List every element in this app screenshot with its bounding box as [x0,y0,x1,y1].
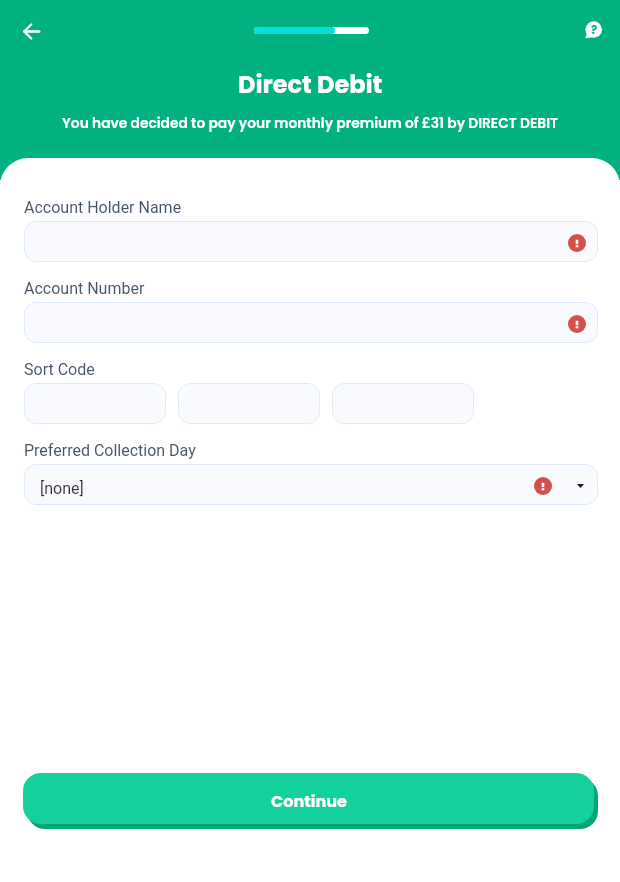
button[interactable] [178,383,320,424]
staticText: ? [591,22,598,38]
staticText: Account Holder Name [24,198,182,217]
button[interactable]: Help [578,15,608,45]
staticText: Account Number [24,279,145,298]
staticText: Sort Code [24,360,95,379]
staticText: Preferred Collection Day [24,441,196,460]
button[interactable] [24,383,166,424]
button[interactable] [332,383,474,424]
staticText: Direct Debit [238,68,383,102]
button[interactable]: Progress [254,27,369,34]
button[interactable]: Back [13,13,49,49]
button[interactable] [24,221,598,262]
staticText: You have decided to pay your monthly pre… [62,114,558,133]
button[interactable] [24,302,598,343]
staticText: Continue [271,790,347,812]
staticText: [none] [40,479,84,498]
button[interactable]: [none] [24,464,598,505]
button[interactable]: Continue [23,773,594,824]
